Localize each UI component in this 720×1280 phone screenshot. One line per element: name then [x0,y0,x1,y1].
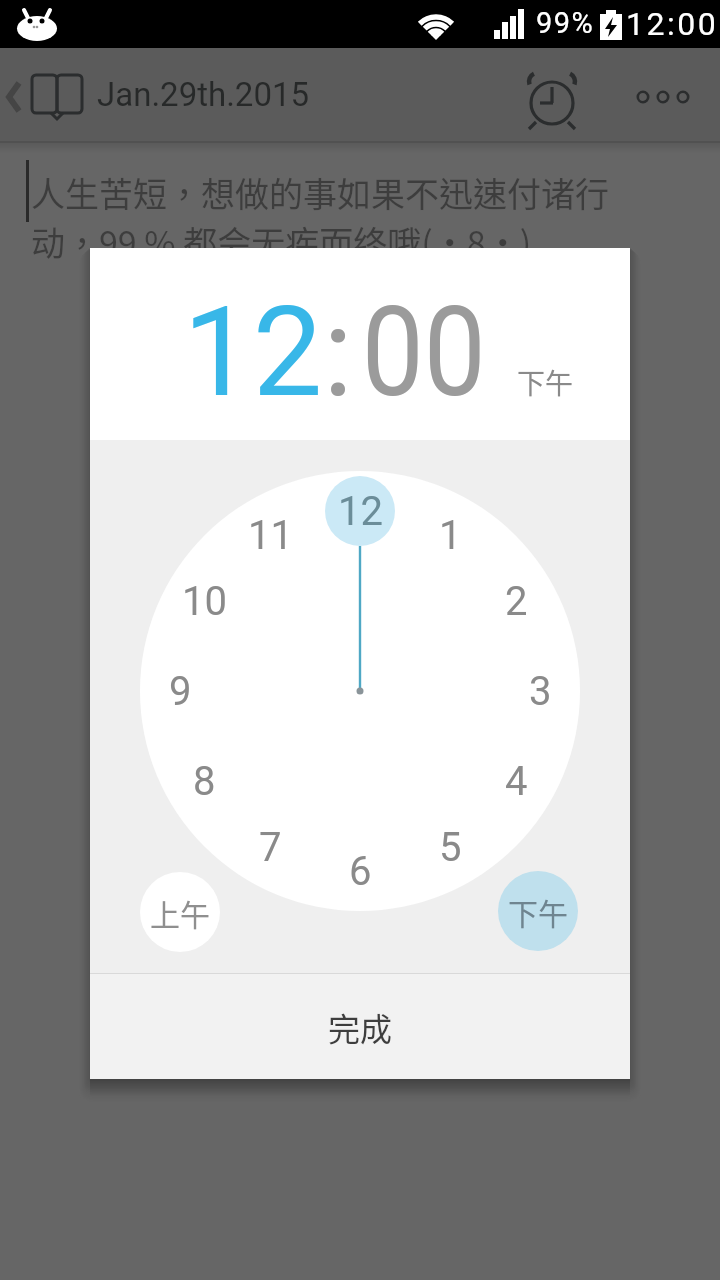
button[interactable]: 1 [410,495,490,575]
staticText: 6 [349,848,372,895]
staticText: 2 [505,578,528,625]
staticText: 5 [439,824,462,871]
staticText: 9 [169,668,192,715]
button[interactable]: 完成 [90,974,630,1079]
button[interactable]: 3 [500,651,580,731]
button[interactable]: 2 [476,561,556,641]
button[interactable]: 下午 [498,871,578,951]
staticText: : [323,280,354,425]
button[interactable]: 7 [230,807,310,887]
staticText: 99% [536,6,595,40]
button[interactable]: 上午 [140,872,220,952]
button[interactable]: 10 [164,561,244,641]
button[interactable]: 6 [320,831,400,911]
staticText: 12 [338,488,383,535]
staticText: 完成 [328,1004,393,1050]
staticText: 人生苦短，想做的事如果不迅速付诸行 动，99 % 都会无疾而终哦(・8・) [31,168,609,266]
button[interactable]: 8 [164,741,244,821]
staticText: 下午 [508,890,568,933]
staticText: 8 [193,758,216,805]
staticText: Jan.29th.2015 [97,75,310,114]
button[interactable]: 9 [140,651,220,731]
staticText: 上午 [150,891,210,934]
staticText: 4 [505,758,528,805]
staticText: 1 [439,512,462,559]
button[interactable] [520,68,586,128]
staticText: 11 [248,512,293,559]
staticText: 3 [529,668,552,715]
button[interactable]: 5 [410,807,490,887]
button[interactable]: 12 [320,471,400,551]
staticText: 12:00 [626,5,719,43]
button[interactable] [626,68,700,128]
button[interactable]: 12 [183,280,323,425]
button[interactable]: 下午 [517,362,574,403]
staticText: 10 [182,578,227,625]
button[interactable]: 11 [230,495,310,575]
staticText: 7 [259,824,282,871]
button[interactable] [0,68,90,128]
button[interactable]: 00 [362,280,486,425]
button[interactable]: 4 [476,741,556,821]
